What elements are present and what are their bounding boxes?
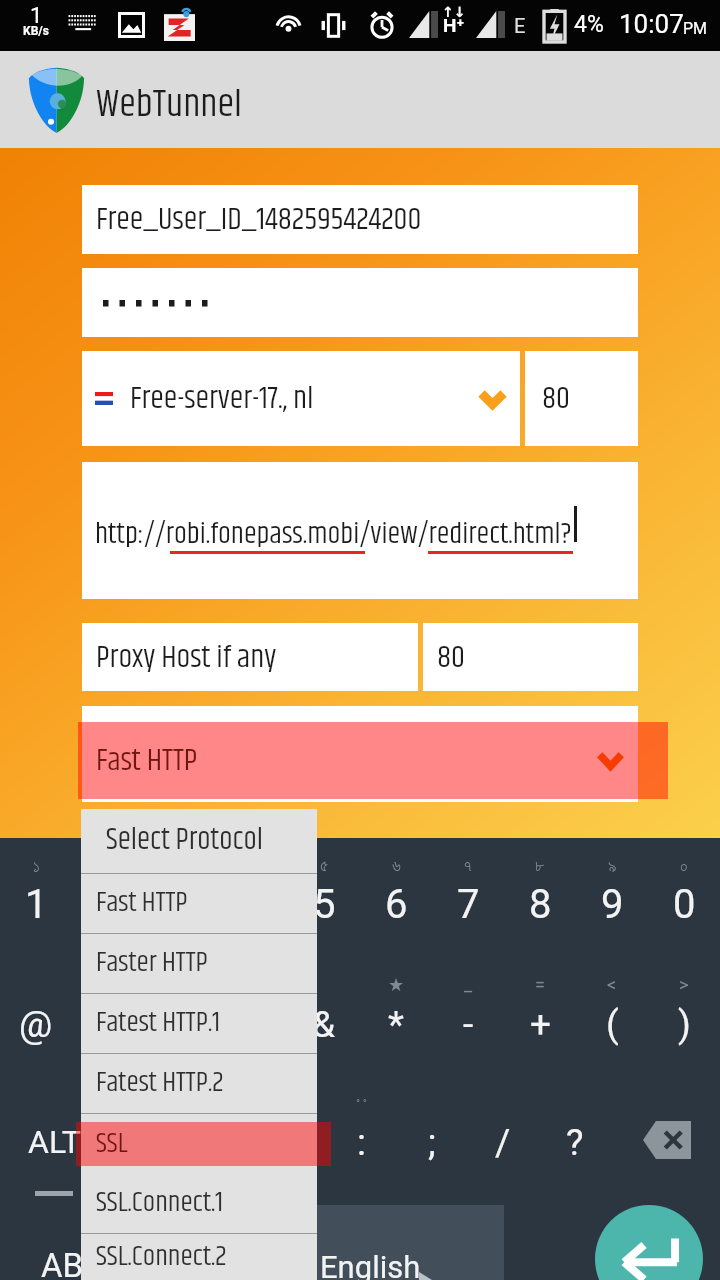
staticText: ০: [680, 858, 688, 875]
staticText: ;: [428, 1121, 436, 1164]
staticText: SSL: [96, 1123, 128, 1166]
button[interactable]: 1: [0, 874, 72, 934]
button[interactable]: %: [216, 994, 288, 1054]
button[interactable]: Proxy Host if any: [82, 623, 418, 691]
button[interactable]: SSL.Connect.2: [81, 1234, 317, 1280]
button[interactable]: ৫: [288, 836, 360, 896]
staticText: 6: [385, 881, 408, 928]
button[interactable]: Fast HTTP: [78, 722, 668, 799]
button[interactable]: ° °: [325, 1073, 397, 1133]
button[interactable]: :: [325, 1112, 397, 1172]
staticText: 7: [457, 881, 480, 928]
staticText: ): [678, 1003, 691, 1046]
button[interactable]: Faster HTTP: [81, 934, 317, 993]
staticText: Fast HTTP: [96, 882, 188, 925]
button[interactable]: ;: [396, 1112, 468, 1172]
button[interactable]: _: [432, 954, 504, 1014]
button[interactable]: -: [432, 994, 504, 1054]
button[interactable]: 8: [504, 874, 576, 934]
staticText: $: [170, 1003, 191, 1046]
staticText: 80: [542, 375, 570, 422]
button[interactable]: (: [576, 994, 648, 1054]
button[interactable]: [82, 268, 638, 337]
button[interactable]: ৯: [576, 836, 648, 896]
button[interactable]: 5: [288, 874, 360, 934]
button[interactable]: SSL.Connect.1: [81, 1174, 317, 1233]
staticText: SSL.Connect.1: [96, 1182, 224, 1225]
button[interactable]: 4: [216, 874, 288, 934]
button[interactable]: 7: [432, 874, 504, 934]
button[interactable]: 0: [648, 874, 720, 934]
button[interactable]: &: [288, 994, 360, 1054]
button[interactable]: http://robi.fonepass.mobi/view/redirect.…: [82, 462, 638, 599]
button[interactable]: 6: [360, 874, 432, 934]
staticText: H⁺: [443, 14, 465, 36]
staticText: ৯: [608, 858, 617, 875]
button[interactable]: 2: [72, 874, 144, 934]
button[interactable]: ৬: [360, 836, 432, 896]
button[interactable]: ৮: [504, 836, 576, 896]
button[interactable]: 80: [423, 623, 638, 691]
button[interactable]: #: [72, 994, 144, 1054]
staticText: Fatest HTTP.2: [96, 1062, 224, 1105]
button[interactable]: >: [648, 954, 720, 1014]
staticText: 1: [30, 3, 43, 29]
staticText: PM: [683, 19, 708, 38]
button[interactable]: ): [648, 994, 720, 1054]
button[interactable]: [82, 706, 638, 802]
staticText: Faster HTTP: [96, 942, 208, 985]
staticText: Add Custom Header: [250, 827, 464, 838]
button[interactable]: ৪: [216, 836, 288, 896]
button[interactable]: 80: [525, 351, 638, 446]
staticText: 2: [97, 881, 120, 928]
button[interactable]: ০: [648, 836, 720, 896]
staticText: WebTunnel: [96, 76, 242, 134]
button[interactable]: ★: [360, 954, 432, 1014]
button[interactable]: <: [576, 954, 648, 1014]
button[interactable]: Backspace: [643, 1121, 691, 1159]
staticText: :: [357, 1121, 366, 1164]
staticText: >: [679, 974, 689, 995]
staticText: SSL.Connect.2: [96, 1236, 227, 1279]
staticText: Free-server-17., nl: [130, 375, 314, 422]
button[interactable]: ৭: [432, 836, 504, 896]
button[interactable]: @: [0, 994, 72, 1054]
button[interactable]: Fatest HTTP.1: [81, 994, 317, 1053]
staticText: *: [388, 1003, 404, 1046]
button[interactable]: /: [467, 1112, 539, 1172]
staticText: ৫: [320, 858, 329, 875]
button[interactable]: SSL: [76, 1122, 331, 1166]
staticText: ৭: [464, 858, 472, 875]
button[interactable]: AB: [22, 1238, 102, 1280]
button[interactable]: Free_User_ID_1482595424200: [82, 185, 638, 254]
staticText: English: [320, 1249, 421, 1280]
staticText: 4%: [574, 11, 604, 38]
button[interactable]: *: [360, 994, 432, 1054]
button[interactable]: =: [504, 954, 576, 1014]
staticText: &: [312, 1003, 336, 1046]
staticText: <: [607, 974, 617, 995]
button[interactable]: ১: [0, 836, 72, 896]
staticText: Fast HTTP: [96, 737, 198, 784]
button[interactable]: Free-server-17., nl: [82, 351, 520, 446]
button[interactable]: 9: [576, 874, 648, 934]
button[interactable]: ?: [539, 1112, 611, 1172]
button[interactable]: ALT: [16, 1113, 92, 1171]
button[interactable]: Fast HTTP: [81, 874, 317, 933]
button[interactable]: English: [225, 1205, 504, 1280]
staticText: ↑↓: [442, 4, 466, 20]
staticText: ১: [33, 858, 40, 875]
staticText: 80: [437, 634, 465, 681]
button[interactable]: ৩: [144, 836, 216, 896]
button[interactable]: Fatest HTTP.2: [81, 1054, 317, 1113]
button[interactable]: ২: [72, 836, 144, 896]
button[interactable]: +: [504, 994, 576, 1054]
staticText: ° °: [356, 1097, 367, 1110]
staticText: Select Protocol: [106, 818, 264, 864]
staticText: ৩: [175, 858, 185, 875]
button[interactable]: 3: [144, 874, 216, 934]
staticText: http://robi.fonepass.mobi/view/redirect.…: [95, 513, 572, 557]
button[interactable]: $: [144, 994, 216, 1054]
button[interactable]: Enter: [595, 1205, 703, 1280]
